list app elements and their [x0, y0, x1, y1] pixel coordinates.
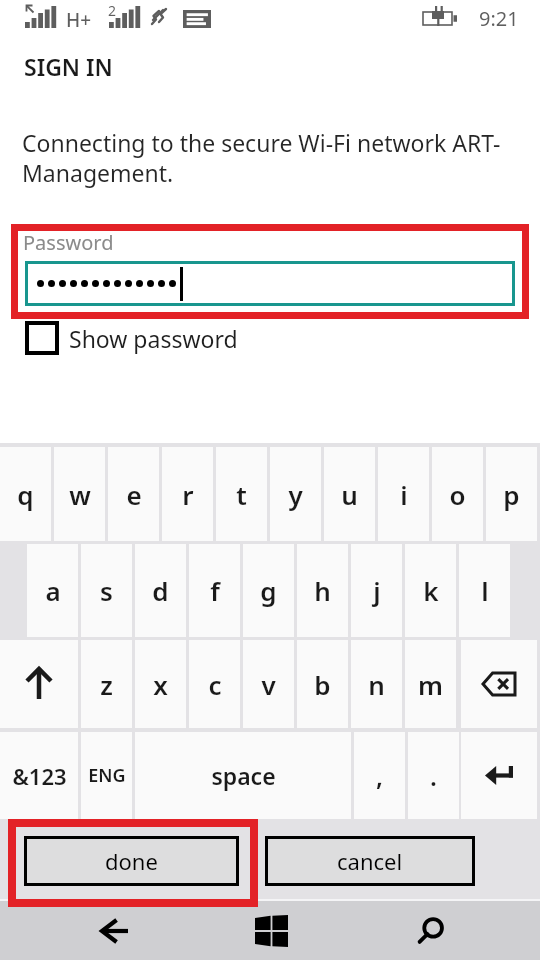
staticText: cancel [337, 846, 403, 876]
staticText: . [430, 759, 437, 793]
staticText: Connecting to the secure Wi-Fi network A… [22, 127, 522, 189]
staticText: 2 [108, 1, 117, 20]
button[interactable]: d [135, 544, 186, 637]
staticText: g [260, 573, 277, 608]
staticText: r [182, 477, 194, 512]
button[interactable]: , [354, 732, 405, 819]
staticText: i [400, 477, 408, 512]
button[interactable] [25, 261, 515, 306]
staticText: Show password [69, 323, 238, 354]
button[interactable]: b [297, 640, 348, 728]
button[interactable]: w [54, 447, 105, 541]
staticText: &123 [12, 761, 67, 791]
staticText: e [126, 477, 142, 512]
staticText: j [373, 573, 381, 608]
staticText: done [105, 846, 158, 876]
staticText: d [152, 573, 169, 608]
staticText: SIGN IN [24, 51, 113, 82]
button[interactable]: s [81, 544, 132, 637]
staticText: 9:21 [479, 5, 519, 32]
button[interactable]: Show password [25, 321, 238, 355]
staticText: H+ [66, 7, 92, 33]
button[interactable]: f [189, 544, 240, 637]
staticText: k [423, 573, 439, 608]
button[interactable]: k [405, 544, 456, 637]
button[interactable]: u [324, 447, 375, 541]
button[interactable]: l [459, 544, 510, 637]
button[interactable]: Backspace [461, 640, 537, 728]
staticText: a [45, 573, 61, 608]
staticText: b [314, 667, 331, 702]
button[interactable]: Start [211, 901, 331, 960]
staticText: p [503, 477, 520, 512]
button[interactable]: j [351, 544, 402, 637]
staticText: space [211, 760, 276, 791]
button[interactable]: g [243, 544, 294, 637]
button[interactable]: t [216, 447, 267, 541]
staticText: v [261, 667, 276, 702]
staticText: y [288, 477, 303, 512]
button[interactable]: ENG [81, 732, 132, 819]
staticText: x [153, 667, 168, 702]
staticText: w [69, 477, 91, 512]
staticText: f [210, 573, 220, 608]
staticText: , [376, 759, 383, 793]
staticText: h [314, 573, 331, 608]
button[interactable]: Shift [0, 640, 78, 728]
button[interactable]: v [243, 640, 294, 728]
button[interactable]: h [297, 544, 348, 637]
button[interactable]: Search [370, 901, 490, 960]
button[interactable]: q [0, 447, 51, 541]
button[interactable]: space [135, 732, 351, 819]
button[interactable]: Enter [461, 732, 537, 819]
button[interactable]: n [351, 640, 402, 728]
staticText: q [17, 477, 34, 512]
staticText: s [100, 573, 113, 608]
button[interactable]: c [189, 640, 240, 728]
button[interactable]: . [408, 732, 459, 819]
button[interactable]: y [270, 447, 321, 541]
button[interactable]: done [24, 836, 239, 886]
button[interactable]: Back [55, 901, 175, 960]
button[interactable]: e [108, 447, 159, 541]
staticText: l [481, 573, 489, 608]
staticText: m [418, 667, 443, 702]
staticText: n [368, 667, 385, 702]
button[interactable]: i [378, 447, 429, 541]
button[interactable]: r [162, 447, 213, 541]
staticText: c [208, 667, 222, 702]
button[interactable]: &123 [0, 732, 78, 819]
button[interactable]: m [405, 640, 456, 728]
staticText: o [449, 477, 466, 512]
button[interactable]: x [135, 640, 186, 728]
button[interactable]: a [27, 544, 78, 637]
button[interactable]: z [81, 640, 132, 728]
button[interactable]: p [486, 447, 537, 541]
staticText: u [341, 477, 358, 512]
button[interactable]: cancel [265, 836, 475, 886]
staticText: ENG [88, 763, 126, 788]
staticText: Password [23, 229, 114, 256]
staticText: t [236, 477, 247, 512]
staticText: z [100, 667, 113, 702]
button[interactable]: o [432, 447, 483, 541]
